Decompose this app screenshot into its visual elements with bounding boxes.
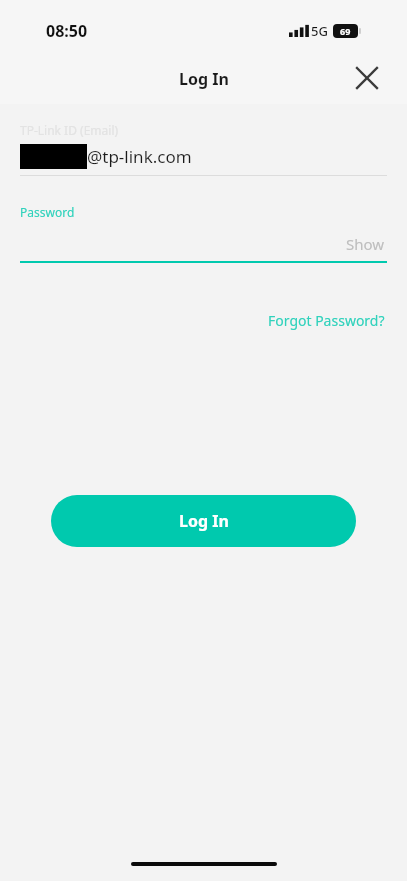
staticText: Show <box>346 234 385 254</box>
staticText: 08:50 <box>46 20 88 42</box>
button[interactable]: Log In <box>51 495 356 547</box>
staticText: Log In <box>179 510 229 532</box>
staticText: Forgot Password? <box>268 311 385 330</box>
staticText: TP-Link ID (Email) <box>20 122 119 138</box>
staticText: Log In <box>179 68 229 90</box>
staticText: 69 <box>340 25 351 37</box>
button[interactable]: Close <box>344 55 390 101</box>
staticText: Password <box>20 204 75 220</box>
button[interactable]: Forgot Password? <box>264 307 389 334</box>
staticText: @tp-link.com <box>87 145 192 168</box>
staticText: 5G <box>311 22 328 40</box>
button[interactable]: Show <box>344 232 387 256</box>
